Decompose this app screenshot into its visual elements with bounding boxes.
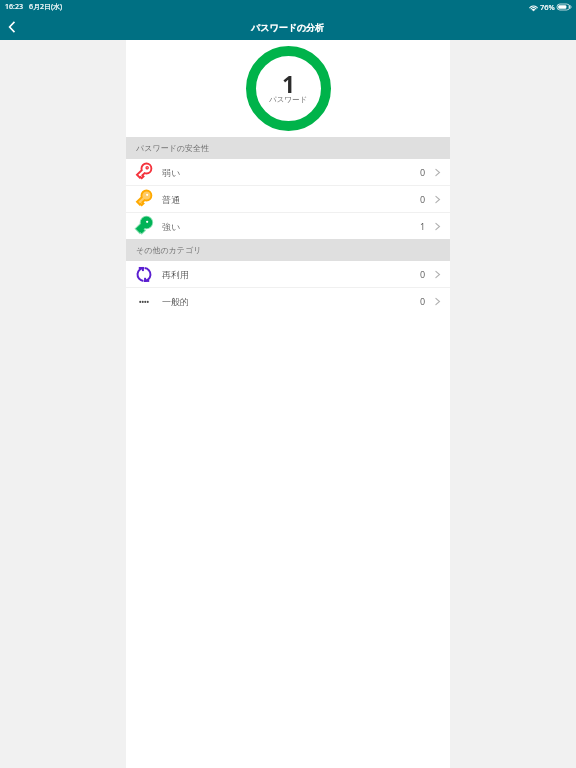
staticText: その他のカテゴリ <box>136 245 202 255</box>
staticText: 0 <box>420 166 426 178</box>
staticText: パスワード <box>269 95 308 104</box>
staticText: 1 <box>282 68 296 99</box>
button[interactable]: 一般的 <box>126 288 450 314</box>
button[interactable]: 再利用 <box>126 261 450 287</box>
staticText: 16:23 <box>5 2 23 12</box>
staticText: 0 <box>420 295 426 307</box>
staticText: 0 <box>420 193 426 205</box>
button[interactable]: 強い <box>126 213 450 239</box>
staticText: 0 <box>420 268 426 280</box>
staticText: パスワードの分析 <box>251 22 325 33</box>
staticText: 普通 <box>162 194 180 205</box>
button[interactable]: Back <box>0 14 23 40</box>
staticText: 76% <box>540 2 555 12</box>
staticText: 強い <box>162 221 181 232</box>
staticText: 6月2日(水) <box>29 2 63 12</box>
button[interactable]: 弱い <box>126 159 450 185</box>
staticText: 1 <box>420 220 426 232</box>
staticText: 一般的 <box>162 296 189 307</box>
staticText: パスワードの安全性 <box>136 143 209 153</box>
button[interactable]: 普通 <box>126 186 450 212</box>
staticText: 弱い <box>162 167 181 178</box>
staticText: 再利用 <box>162 269 189 280</box>
